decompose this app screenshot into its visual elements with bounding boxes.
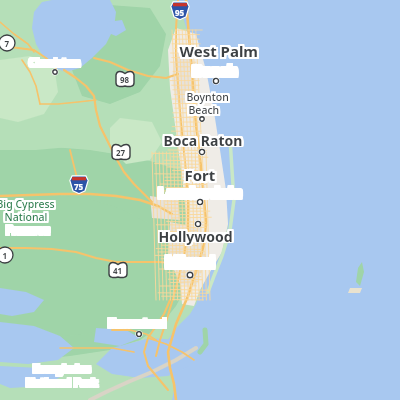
button[interactable] <box>0 0 400 400</box>
